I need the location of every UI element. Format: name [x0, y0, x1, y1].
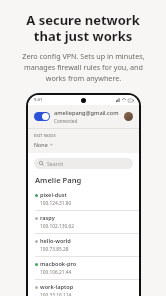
button[interactable]: EXIT NODE	[28, 129, 139, 153]
staticText: 100.33.16.114	[40, 292, 72, 296]
staticText: pixel-dust	[40, 191, 67, 199]
button[interactable]: hello-world	[28, 234, 139, 257]
staticText: 9:41	[34, 97, 43, 103]
staticText: 100.73.85.28	[40, 246, 69, 253]
staticText: 100.102.130.62	[40, 223, 75, 230]
button[interactable]: Account avatar	[124, 112, 133, 121]
button[interactable]: macbook-pro	[28, 257, 139, 280]
staticText: work-laptop	[40, 283, 74, 291]
button[interactable]: pixel-dust	[28, 188, 139, 211]
staticText: EXIT NODE	[34, 133, 56, 139]
staticText: Connected	[54, 118, 78, 124]
button[interactable]: work-laptop	[28, 280, 139, 296]
staticText: A secure network that just works	[26, 11, 140, 44]
staticText: 100.106.21.44	[40, 269, 72, 276]
staticText: hello-world	[40, 237, 71, 245]
button[interactable]: VPN toggle, on	[34, 112, 50, 121]
staticText: 100.124.31.80	[40, 200, 72, 207]
button[interactable]: VPN toggle, on	[28, 105, 139, 128]
button[interactable]: raspy	[28, 211, 139, 234]
button[interactable]: Search	[34, 158, 133, 169]
staticText: ameliepang@gmail.com	[54, 109, 119, 117]
staticText: Search	[47, 160, 64, 167]
staticText: raspy	[40, 214, 55, 222]
staticText: Amelie Pang	[35, 175, 82, 185]
staticText: macbook-pro	[40, 260, 77, 268]
staticText: Zero config VPN. Sets up in minutes, man…	[22, 51, 145, 83]
staticText: None	[34, 141, 48, 148]
